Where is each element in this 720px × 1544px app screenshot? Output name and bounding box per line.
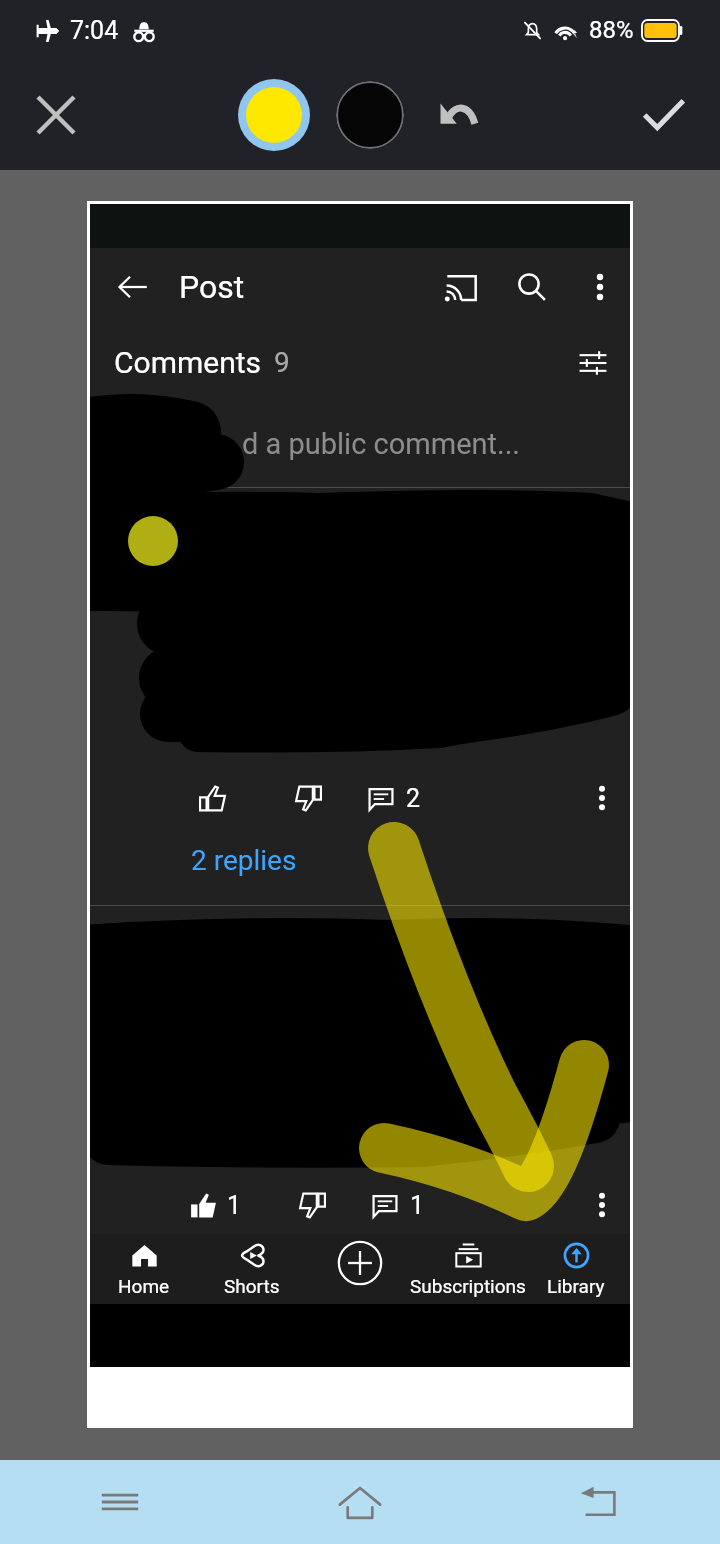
button[interactable]: Search xyxy=(510,265,554,309)
button[interactable]: Create xyxy=(306,1234,414,1304)
staticText: Post xyxy=(179,268,245,306)
button[interactable]: Sort comments xyxy=(572,342,614,384)
button[interactable]: 1 xyxy=(372,1191,425,1220)
staticText: Library xyxy=(547,1275,605,1297)
button[interactable]: Comment options xyxy=(582,778,622,818)
button[interactable]: Undo xyxy=(428,84,490,146)
button[interactable]: 2 replies xyxy=(191,844,297,877)
staticText: Comments xyxy=(114,345,262,380)
button[interactable]: Recent apps xyxy=(0,1460,240,1544)
staticText: d a public comment... xyxy=(242,427,520,461)
staticText: 7:04 xyxy=(70,16,119,45)
staticText: 88% xyxy=(589,16,634,44)
staticText: 2 xyxy=(406,784,421,813)
button[interactable]: 2 xyxy=(368,784,421,813)
button[interactable]: More options xyxy=(578,265,622,309)
button[interactable]: 1 xyxy=(190,1191,242,1220)
staticText: Shorts xyxy=(224,1275,280,1297)
button[interactable]: Cast xyxy=(438,265,482,309)
button[interactable]: Dislike xyxy=(290,1183,334,1227)
button[interactable]: Home xyxy=(240,1460,480,1544)
button[interactable]: Dislike xyxy=(286,776,330,820)
button[interactable]: Like xyxy=(190,776,234,820)
button[interactable]: Back xyxy=(480,1460,720,1544)
staticText: Subscriptions xyxy=(410,1275,526,1297)
staticText: 9 xyxy=(274,346,290,379)
staticText: 2 replies xyxy=(191,844,297,877)
button[interactable]: Yellow colour xyxy=(238,79,310,151)
staticText: Home xyxy=(118,1275,170,1297)
staticText: 1 xyxy=(227,1191,242,1220)
button[interactable]: Shorts xyxy=(198,1234,306,1304)
staticText: 1 xyxy=(410,1191,425,1220)
button[interactable]: Home xyxy=(90,1234,198,1304)
button[interactable]: Close xyxy=(24,83,88,147)
button[interactable]: Black colour xyxy=(336,81,404,149)
button[interactable]: Done xyxy=(634,85,694,145)
button[interactable]: Subscriptions xyxy=(414,1234,522,1304)
button[interactable]: Library xyxy=(522,1234,630,1304)
button[interactable]: Comment options xyxy=(582,1185,622,1225)
button[interactable]: Back xyxy=(109,263,157,311)
